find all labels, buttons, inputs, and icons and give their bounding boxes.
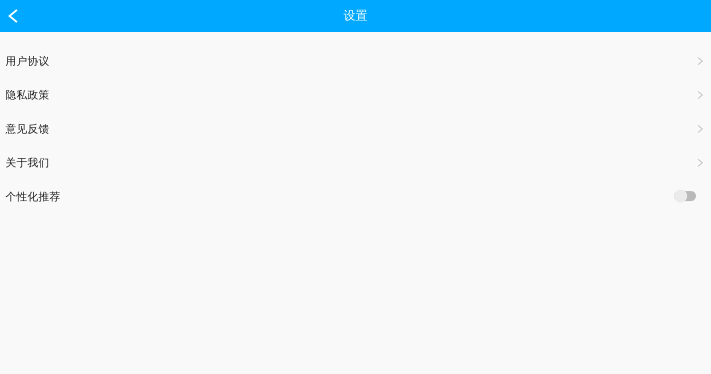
staticText: 隐私政策 [5, 88, 49, 102]
staticText: 设置 [343, 8, 367, 23]
staticText: 意见反馈 [5, 122, 49, 135]
button[interactable]: 隐私政策 [0, 78, 711, 112]
button[interactable]: 返回 [0, 0, 28, 32]
button[interactable]: 关于我们 [0, 146, 711, 180]
staticText: 用户协议 [5, 55, 49, 68]
staticText: 关于我们 [5, 156, 49, 169]
button[interactable]: 个性化推荐 [0, 180, 711, 214]
button[interactable]: 用户协议 [0, 44, 711, 78]
staticText: 个性化推荐 [5, 190, 60, 203]
button[interactable]: 意见反馈 [0, 112, 711, 146]
